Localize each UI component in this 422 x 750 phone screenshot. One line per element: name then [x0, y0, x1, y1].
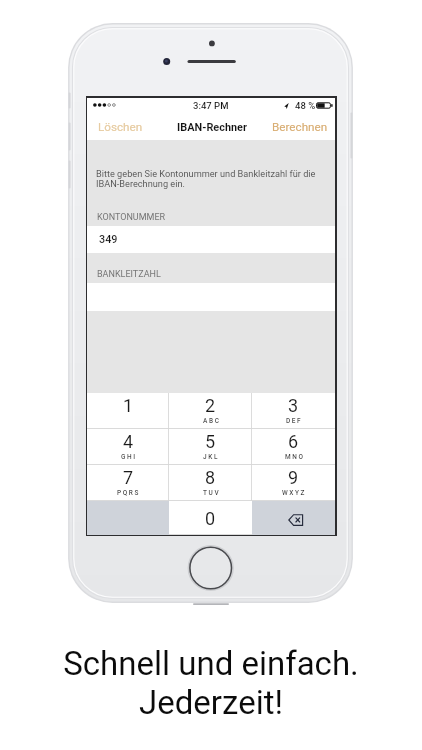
staticText: 8	[205, 467, 216, 488]
staticText: 1	[123, 395, 134, 416]
button[interactable]: Berechnen	[261, 113, 335, 140]
button[interactable]: 5	[169, 429, 252, 465]
button[interactable]: 3	[252, 393, 335, 429]
staticText: 2	[205, 395, 216, 416]
button[interactable]: 9	[252, 465, 335, 501]
staticText: 4	[123, 431, 134, 452]
staticText: JKL	[203, 453, 220, 461]
staticText: 3:47 PM	[193, 100, 229, 111]
staticText: Berechnen	[272, 120, 328, 134]
button[interactable]: 349	[87, 226, 335, 253]
staticText: Löschen	[98, 120, 143, 134]
button[interactable]: 0	[169, 501, 252, 535]
button[interactable]: 4	[87, 429, 169, 465]
staticText: 5	[205, 431, 216, 452]
staticText: 9	[288, 467, 299, 488]
button[interactable]: Löschen	[87, 113, 161, 140]
staticText: 3	[288, 395, 299, 416]
staticText: IBAN-Rechner	[177, 121, 247, 134]
staticText: WXYZ	[282, 489, 307, 497]
staticText: 7	[123, 467, 134, 488]
staticText: TUV	[203, 489, 221, 497]
button[interactable]: Delete	[252, 501, 335, 535]
staticText: MNO	[285, 453, 305, 461]
staticText: GHI	[121, 453, 137, 461]
staticText: BANKLEITZAHL	[97, 269, 161, 280]
button[interactable]: 8	[169, 465, 252, 501]
button[interactable]: 1	[87, 393, 169, 429]
button[interactable]: 6	[252, 429, 335, 465]
staticText: 48 %	[295, 100, 316, 111]
button[interactable]: 2	[169, 393, 252, 429]
staticText: Schnell und einfach.	[63, 644, 359, 683]
staticText: Jederzeit!	[139, 683, 283, 722]
staticText: 0	[205, 508, 216, 529]
staticText: PQRS	[117, 489, 141, 497]
staticText: 6	[288, 431, 299, 452]
staticText: 349	[99, 233, 118, 246]
staticText: Bitte geben Sie Kontonummer und Bankleit…	[96, 168, 316, 189]
button[interactable]: 7	[87, 465, 169, 501]
staticText: DEF	[286, 417, 303, 425]
staticText: ABC	[203, 417, 221, 425]
staticText: KONTONUMMER	[97, 212, 166, 223]
